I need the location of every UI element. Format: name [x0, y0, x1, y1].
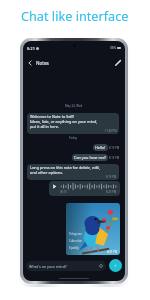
button[interactable]: Long press on this note for delete, edit…: [27, 164, 119, 180]
button[interactable]: Can you hear me?: [72, 154, 108, 161]
staticText: 8:19 PM: [109, 156, 120, 160]
staticText: 8:19 PM: [109, 146, 120, 150]
button[interactable]: Edit note: [112, 57, 123, 68]
button[interactable]: Hello!: [93, 144, 108, 151]
staticText: Can you hear me?: [74, 155, 106, 160]
staticText: 8:20 PM: [106, 190, 117, 194]
staticText: and other options.: [30, 170, 63, 175]
button[interactable]: Record voice message: [109, 259, 122, 272]
staticText: put it all in here.: [30, 124, 59, 129]
staticText: 8:21 PM: [107, 250, 118, 254]
button[interactable]: Photo attachment: [66, 203, 120, 255]
staticText: Spotify: [69, 246, 79, 250]
staticText: May 24, Wed: [65, 104, 83, 108]
staticText: Hello!: [95, 145, 106, 150]
staticText: 00:15: [60, 190, 67, 194]
staticText: 8:19 PM: [106, 175, 117, 179]
staticText: Notes: [36, 60, 49, 66]
staticText: Ideas, lists, or anything on your mind,: [30, 119, 98, 124]
button[interactable]: Play voice message: [49, 181, 120, 196]
staticText: What's on your mind?: [29, 264, 67, 269]
staticText: Telegram: [69, 232, 83, 236]
staticText: 36%: [110, 46, 116, 50]
button[interactable]: What's on your mind?: [26, 261, 106, 271]
staticText: Calendar: [69, 239, 82, 243]
staticText: 8:21: [27, 46, 35, 51]
staticText: Today: [69, 136, 78, 140]
button[interactable]: Welcome to Note to Self!: [27, 113, 119, 134]
staticText: Long press on this note for delete, edit…: [30, 165, 100, 170]
staticText: Welcome to Note to Self!: [30, 114, 74, 119]
staticText: 11:40 PM: [105, 129, 117, 133]
button[interactable]: Back: [25, 58, 35, 68]
staticText: Chat like interface: [21, 7, 129, 24]
